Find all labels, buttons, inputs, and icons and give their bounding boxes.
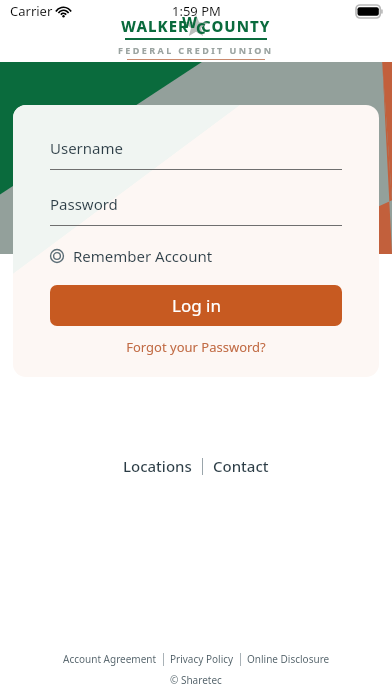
staticText: 1:59 PM [172, 2, 221, 20]
button[interactable]: Locations [113, 452, 202, 480]
button[interactable]: Password [50, 194, 342, 226]
staticText: Privacy Policy [170, 652, 234, 666]
staticText: Online Disclosure [247, 652, 330, 666]
staticText: Contact [213, 456, 269, 476]
button[interactable]: Log in [50, 285, 342, 326]
staticText: © Sharetec [170, 673, 222, 687]
button[interactable]: Privacy Policy [164, 650, 240, 668]
staticText: Password [50, 194, 118, 214]
staticText: Remember Account [73, 246, 213, 266]
button[interactable]: Account Agreement [57, 650, 163, 668]
staticText: Log in [172, 294, 221, 317]
button[interactable]: Forgot your Password? [50, 338, 342, 356]
staticText: W [182, 12, 198, 32]
staticText: WALKER [121, 16, 189, 36]
staticText: Carrier [10, 2, 53, 20]
staticText: COUNTY [201, 16, 271, 36]
staticText: C [196, 18, 206, 38]
staticText: Username [50, 138, 123, 158]
button[interactable]: Contact [203, 452, 279, 480]
button[interactable]: Remember Account [50, 243, 213, 269]
button[interactable]: Username [50, 138, 342, 170]
staticText: FEDERAL CREDIT UNION [118, 44, 274, 56]
staticText: Account Agreement [63, 652, 157, 666]
staticText: Locations [123, 456, 192, 476]
button[interactable]: Online Disclosure [241, 650, 336, 668]
staticText: Forgot your Password? [126, 338, 266, 356]
